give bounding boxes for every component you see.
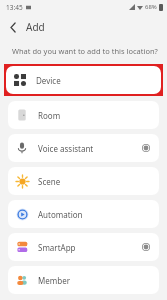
button[interactable]: Help (140, 241, 152, 253)
button[interactable]: Scene (8, 167, 159, 195)
staticText: What do you want to add to this location… (12, 46, 158, 56)
button[interactable]: Room (8, 101, 159, 129)
staticText: SmartApp (38, 242, 140, 253)
button[interactable]: Member (8, 266, 159, 294)
staticText: Automation (38, 209, 152, 220)
staticText: 13:45 (6, 3, 23, 12)
button[interactable]: Device (6, 66, 161, 94)
staticText: Member (38, 275, 152, 286)
button[interactable]: Help (140, 142, 152, 154)
button[interactable]: SmartApp (8, 233, 159, 261)
staticText: Device (36, 75, 154, 86)
button[interactable]: Voice assistant (8, 134, 159, 162)
staticText: 68% (145, 3, 157, 11)
button[interactable]: Back (0, 14, 26, 40)
staticText: Room (38, 110, 152, 121)
staticText: Add (26, 20, 45, 34)
button[interactable]: Automation (8, 200, 159, 228)
staticText: Scene (38, 176, 152, 187)
staticText: Voice assistant (38, 143, 140, 154)
